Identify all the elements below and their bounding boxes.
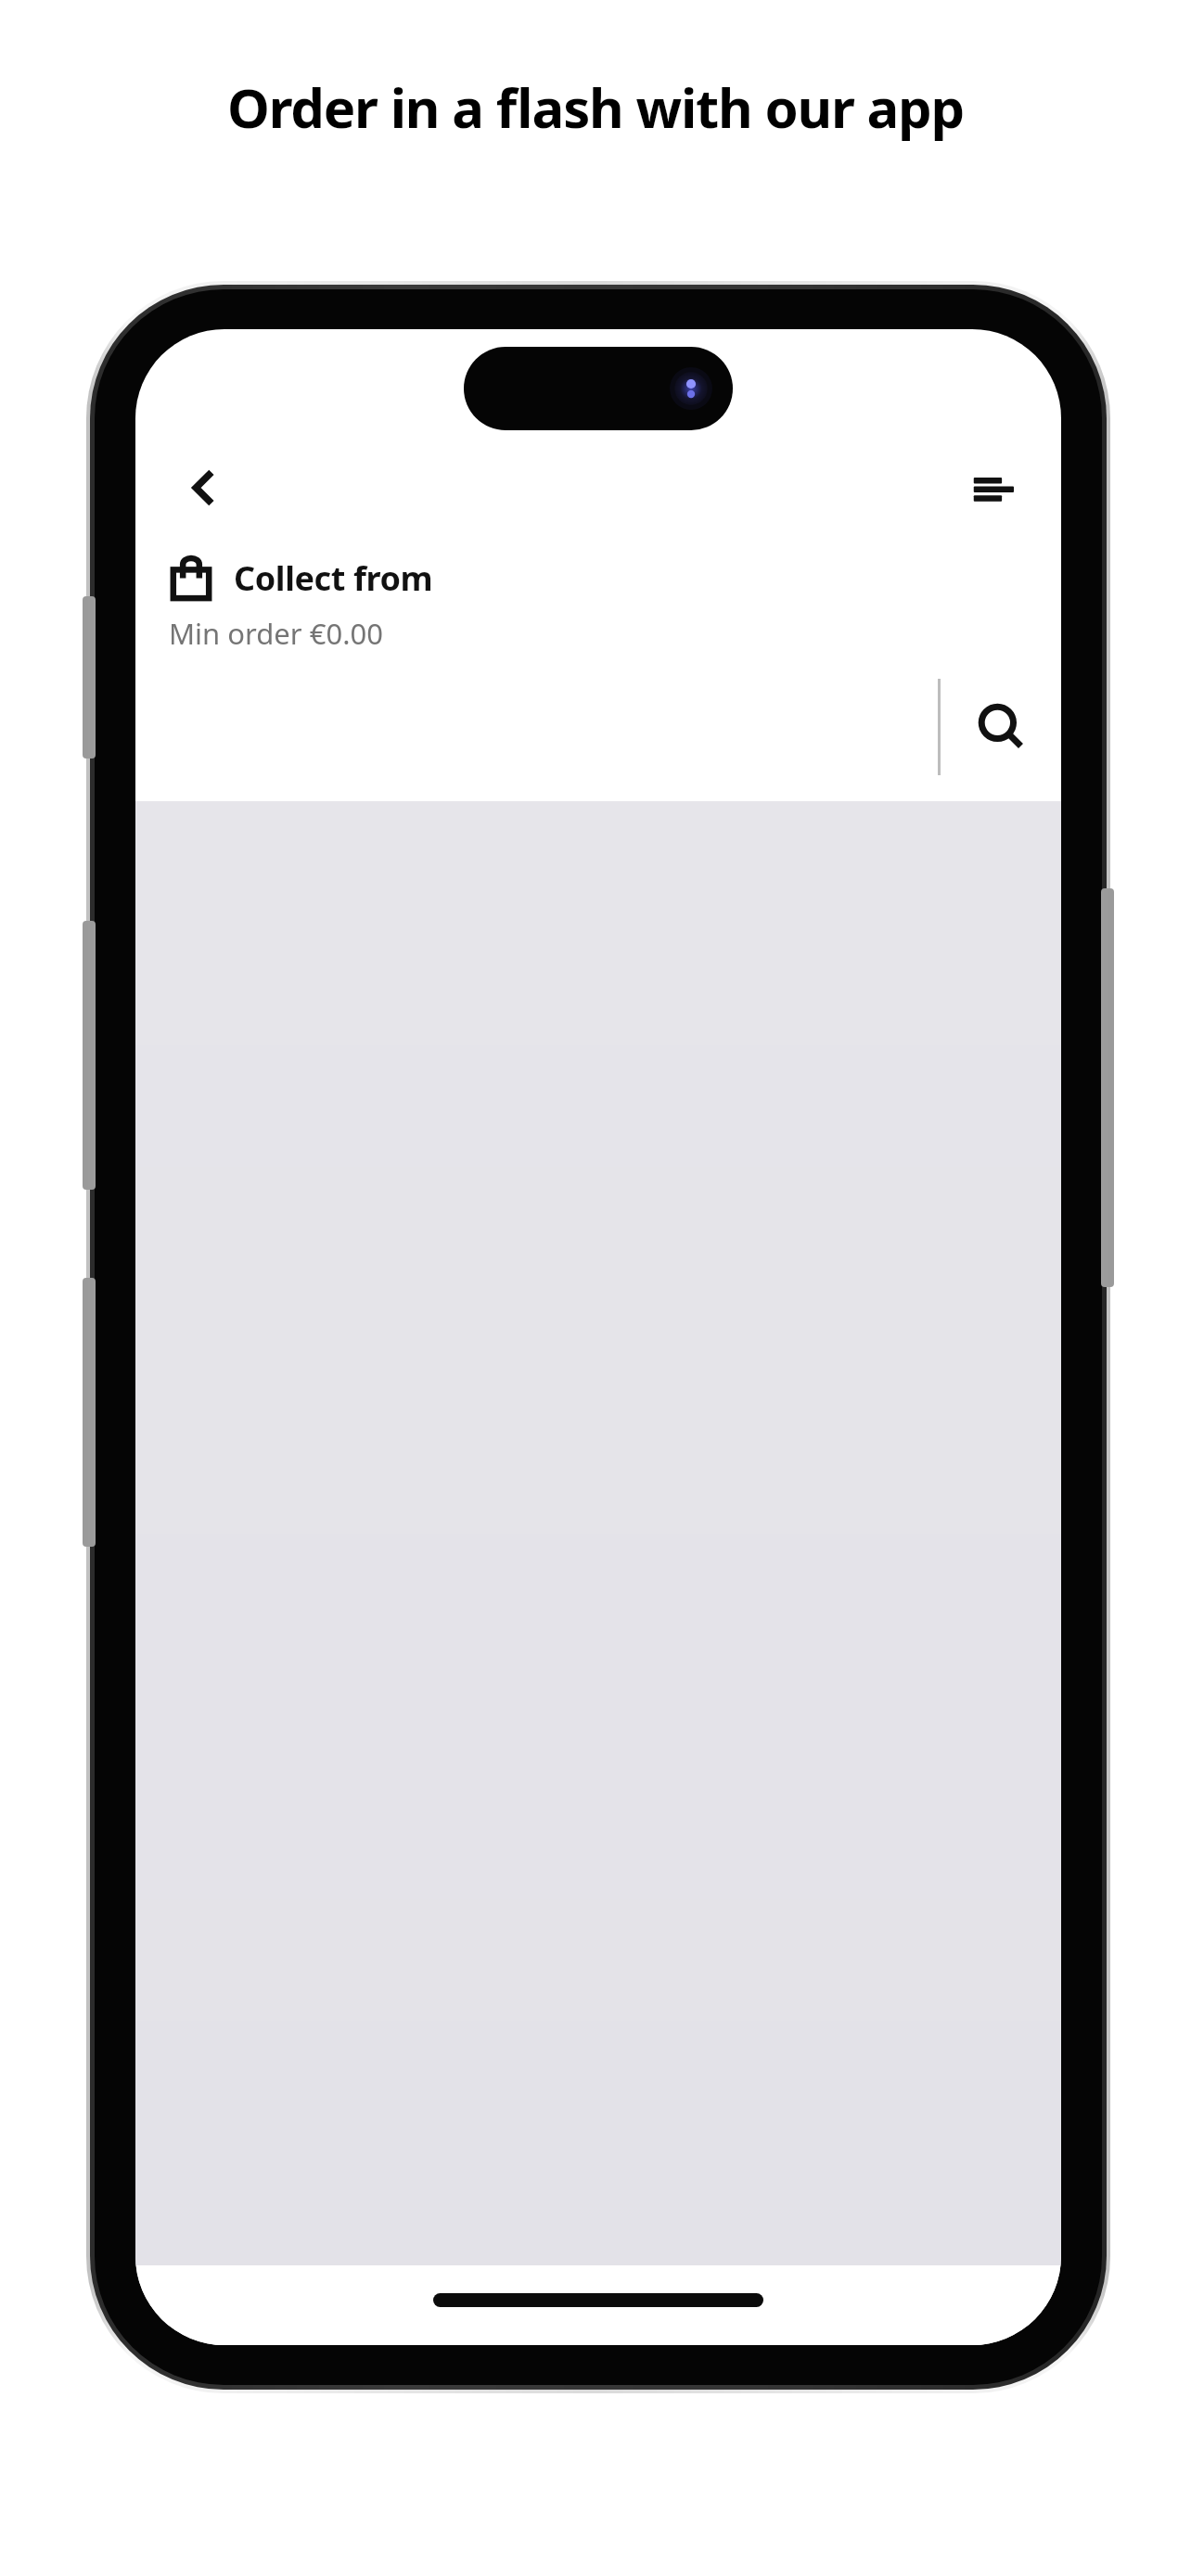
staticText: Min order €0.00 (169, 614, 383, 653)
staticText: Collect from (234, 555, 433, 601)
button[interactable]: Collect from (169, 555, 1061, 601)
button[interactable]: Search (941, 653, 1061, 801)
button[interactable]: Menu (954, 449, 1031, 527)
staticText: Order in a flash with our app (0, 70, 1191, 144)
button[interactable]: Back (165, 449, 243, 527)
